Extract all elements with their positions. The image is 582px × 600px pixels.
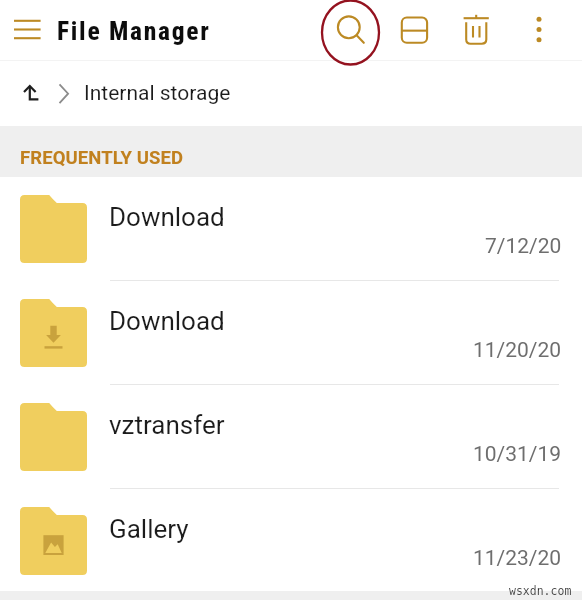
button[interactable]: Delete bbox=[458, 12, 494, 48]
staticText: Gallery bbox=[109, 514, 189, 544]
staticText: vztransfer bbox=[109, 410, 225, 440]
button[interactable]: Change view bbox=[397, 12, 431, 48]
staticText: 10/31/19 bbox=[473, 442, 562, 467]
button[interactable]: Gallery bbox=[0, 489, 582, 593]
button[interactable]: More options bbox=[528, 12, 552, 48]
staticText: wsxdn.com bbox=[509, 584, 572, 597]
button[interactable]: vztransfer bbox=[0, 385, 582, 489]
staticText: File Manager bbox=[57, 16, 211, 46]
button[interactable]: Download bbox=[0, 281, 582, 385]
button[interactable]: Download bbox=[0, 177, 582, 281]
button[interactable]: Internal storage bbox=[84, 81, 231, 106]
staticText: 7/12/20 bbox=[485, 234, 562, 259]
staticText: 11/23/20 bbox=[473, 546, 562, 571]
staticText: FREQUENTLY USED bbox=[20, 147, 184, 169]
staticText: 11/20/20 bbox=[473, 338, 562, 363]
button[interactable]: Navigation menu bbox=[13, 13, 42, 43]
staticText: Download bbox=[109, 202, 225, 232]
button[interactable]: Search bbox=[331, 10, 367, 50]
staticText: Download bbox=[109, 306, 225, 336]
button[interactable]: Up one level bbox=[16, 78, 46, 108]
